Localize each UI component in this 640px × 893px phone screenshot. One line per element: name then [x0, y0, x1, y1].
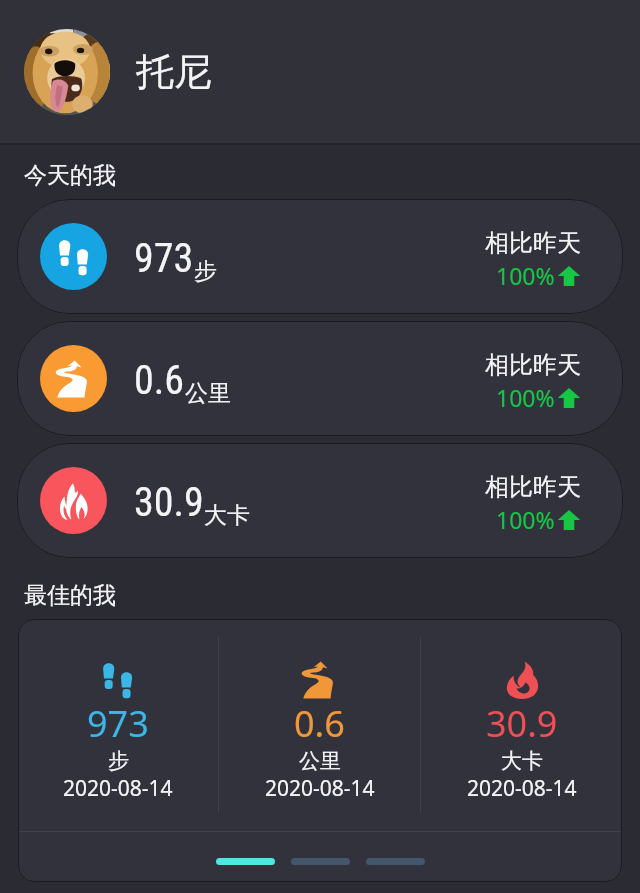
- staticText: 相比昨天: [485, 350, 581, 380]
- staticText: 30.9: [486, 699, 558, 748]
- staticText: 相比昨天: [485, 228, 581, 258]
- staticText: 2020-08-14: [265, 774, 375, 803]
- staticText: 30.9: [134, 479, 204, 526]
- staticText: 公里: [185, 379, 231, 408]
- staticText: 100%: [496, 382, 555, 413]
- staticText: 973: [87, 699, 149, 748]
- button[interactable]: 30.9: [421, 619, 622, 831]
- button[interactable]: 30.9: [17, 443, 623, 558]
- staticText: 步: [108, 748, 129, 774]
- staticText: 相比昨天: [485, 472, 581, 502]
- staticText: 2020-08-14: [467, 774, 577, 803]
- staticText: 大卡: [501, 748, 543, 774]
- button[interactable]: 973: [18, 619, 218, 831]
- staticText: 托尼: [136, 48, 212, 96]
- button[interactable]: Page 2: [291, 858, 350, 865]
- button[interactable]: 973: [17, 199, 623, 314]
- button[interactable]: 0.6: [219, 619, 420, 831]
- staticText: 100%: [496, 260, 555, 291]
- button[interactable]: Page 3: [366, 858, 425, 865]
- staticText: 公里: [299, 748, 341, 774]
- staticText: 步: [194, 257, 217, 286]
- staticText: 0.6: [134, 357, 185, 404]
- staticText: 大卡: [204, 501, 250, 530]
- button[interactable]: 托尼: [0, 0, 640, 143]
- staticText: 2020-08-14: [63, 774, 173, 803]
- staticText: 973: [134, 235, 194, 282]
- staticText: 100%: [496, 504, 555, 535]
- staticText: 0.6: [294, 699, 345, 748]
- staticText: 今天的我: [24, 161, 116, 190]
- button[interactable]: 0.6: [17, 321, 623, 436]
- staticText: 最佳的我: [24, 581, 116, 610]
- button[interactable]: Page 1: [216, 858, 275, 865]
